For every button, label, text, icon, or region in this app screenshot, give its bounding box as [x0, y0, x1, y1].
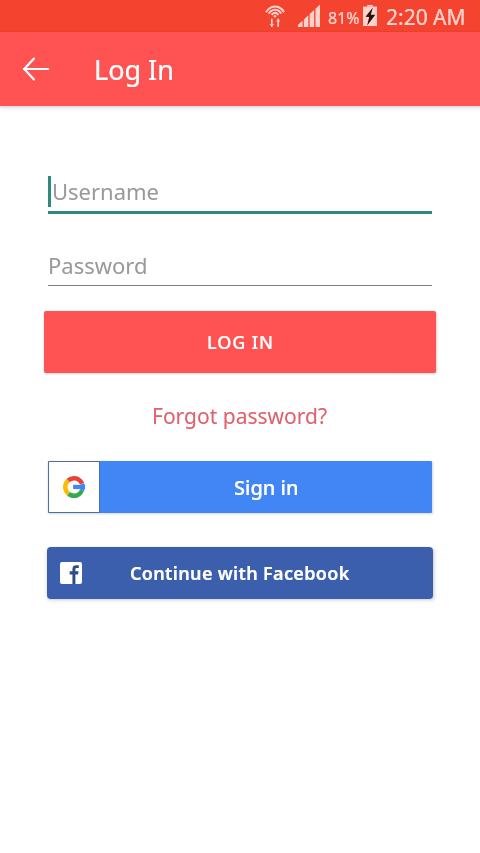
button[interactable]: Username	[48, 172, 432, 214]
staticText: Continue with Facebook	[130, 561, 350, 586]
staticText: Sign in	[234, 474, 299, 501]
staticText: Log In	[94, 51, 174, 88]
button[interactable]: Back	[12, 45, 60, 93]
button[interactable]: Sign in	[48, 461, 432, 513]
button[interactable]: LOG IN	[44, 311, 436, 373]
staticText: 81%	[328, 7, 360, 29]
staticText: LOG IN	[207, 330, 274, 355]
staticText: 2:20 AM	[386, 3, 466, 32]
button[interactable]: Forgot password?	[152, 402, 328, 431]
staticText: Password	[48, 250, 148, 280]
button[interactable]: Continue with Facebook	[47, 547, 433, 599]
button[interactable]: Password	[48, 246, 432, 286]
staticText: Username	[52, 176, 160, 206]
